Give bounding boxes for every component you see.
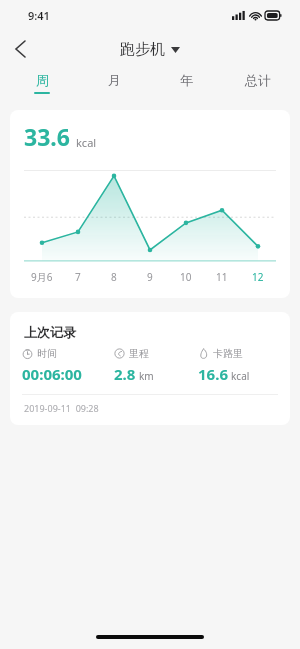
staticText: 周 [36,72,49,88]
staticText: 2.8 [114,364,136,384]
staticText: 总计 [245,72,271,88]
staticText: 年 [180,72,193,88]
staticText: 9月6 [31,270,53,284]
button[interactable]: 月 [78,68,150,98]
staticText: 上次记录 [24,324,76,340]
staticText: 10 [180,270,192,284]
button[interactable]: 总计 [222,68,294,98]
staticText: 里程 [129,347,149,360]
staticText: 9:41 [28,8,50,23]
button[interactable]: 上次记录 [10,312,290,425]
staticText: kcal [231,369,250,383]
button[interactable]: 周 [6,68,78,98]
staticText: 12 [252,270,264,284]
staticText: km [139,369,154,383]
button[interactable]: Back [0,30,40,68]
button[interactable]: 33.6 [10,110,290,298]
staticText: 8 [111,270,117,284]
staticText: 00:06:00 [22,364,82,384]
button[interactable]: 年 [150,68,222,98]
staticText: 卡路里 [213,347,243,360]
staticText: 9 [147,270,153,284]
staticText: 月 [108,72,121,88]
staticText: 时间 [37,347,57,360]
staticText: 2019-09-11 09:28 [24,402,99,414]
button[interactable]: 跑步机 [120,40,180,59]
staticText: 7 [75,270,81,284]
staticText: 33.6 [24,121,70,152]
staticText: 跑步机 [120,40,165,59]
staticText: kcal [76,135,97,150]
staticText: 11 [216,270,228,284]
staticText: 16.6 [198,364,228,384]
